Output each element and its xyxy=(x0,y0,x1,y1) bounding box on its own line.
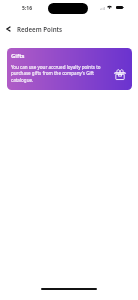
button[interactable]: Gifts xyxy=(7,48,132,90)
staticText: You can use your accrued loyalty points … xyxy=(11,64,101,84)
button[interactable]: Back xyxy=(0,21,16,37)
staticText: 5:16 xyxy=(22,5,32,12)
staticText: Gifts xyxy=(11,52,25,60)
staticText: Redeem Points xyxy=(17,25,63,33)
